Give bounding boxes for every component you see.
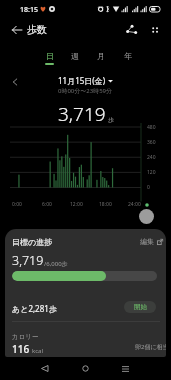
button[interactable]: 編集: [136, 233, 166, 250]
staticText: 6:00: [42, 201, 52, 208]
staticText: 120: [147, 169, 156, 176]
button[interactable]: More options: [143, 18, 166, 41]
staticText: 0時00分〜23時59分: [58, 87, 113, 95]
staticText: kcal: [32, 347, 43, 355]
staticText: 編集: [140, 237, 154, 246]
staticText: 0: [147, 184, 150, 191]
staticText: 年: [124, 51, 132, 61]
staticText: 3,719: [12, 252, 44, 269]
staticText: カロリー: [12, 333, 39, 341]
button[interactable]: 週: [62, 46, 88, 68]
staticText: 24:00: [128, 201, 141, 208]
button[interactable]: 月: [88, 46, 114, 68]
button[interactable]: Back: [29, 357, 59, 380]
staticText: 240: [147, 154, 156, 161]
staticText: 開始: [134, 303, 147, 311]
staticText: 週: [71, 51, 79, 61]
button[interactable]: 11月15日(金): [58, 75, 113, 86]
staticText: 116: [12, 342, 30, 356]
staticText: 目標の進捗: [12, 237, 53, 247]
staticText: 11月15日(金): [58, 75, 106, 86]
staticText: 480: [147, 124, 156, 131]
button[interactable]: Previous day: [6, 73, 24, 91]
staticText: 3,719: [58, 101, 106, 127]
button[interactable]: Share: [120, 18, 143, 41]
button[interactable]: Recent apps: [110, 357, 140, 380]
staticText: 18:00: [99, 201, 112, 208]
staticText: 歩: [108, 116, 114, 124]
staticText: 歩数: [27, 23, 47, 36]
staticText: 18:15: [20, 5, 38, 15]
staticText: 月: [97, 51, 105, 61]
staticText: あと2,281歩: [12, 303, 57, 314]
staticText: 日: [46, 51, 54, 61]
staticText: 卵2個に相当: [135, 343, 166, 351]
button[interactable]: Scroll handle: [139, 209, 154, 224]
staticText: 360: [147, 139, 156, 146]
button[interactable]: 開始: [124, 301, 156, 313]
staticText: /6,000歩: [44, 260, 68, 268]
button[interactable]: Back: [5, 18, 28, 41]
button[interactable]: Home: [70, 357, 100, 380]
staticText: 0:00: [12, 201, 22, 208]
button[interactable]: 年: [115, 46, 141, 68]
button[interactable]: 日: [36, 46, 62, 68]
staticText: 12:00: [70, 201, 83, 208]
